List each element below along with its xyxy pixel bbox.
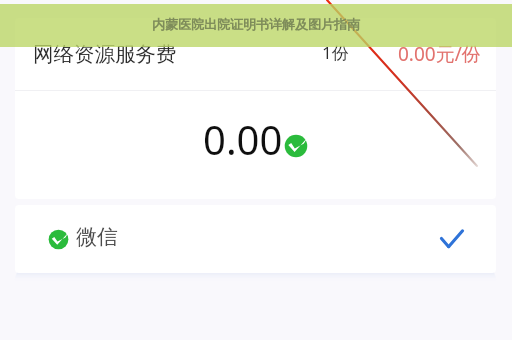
button[interactable]: 微信 [15,205,496,273]
staticText: 内蒙医院出院证明书详解及图片指南 [0,16,512,32]
staticText: 微信 [76,224,118,250]
staticText: 0.00元/份 [398,41,481,67]
other: Selected [440,227,464,251]
staticText: 0.00 [203,112,283,166]
button[interactable]: 网络资源服务费 [15,18,496,90]
staticText: 1份 [322,41,349,64]
staticText: 网络资源服务费 [33,41,177,67]
